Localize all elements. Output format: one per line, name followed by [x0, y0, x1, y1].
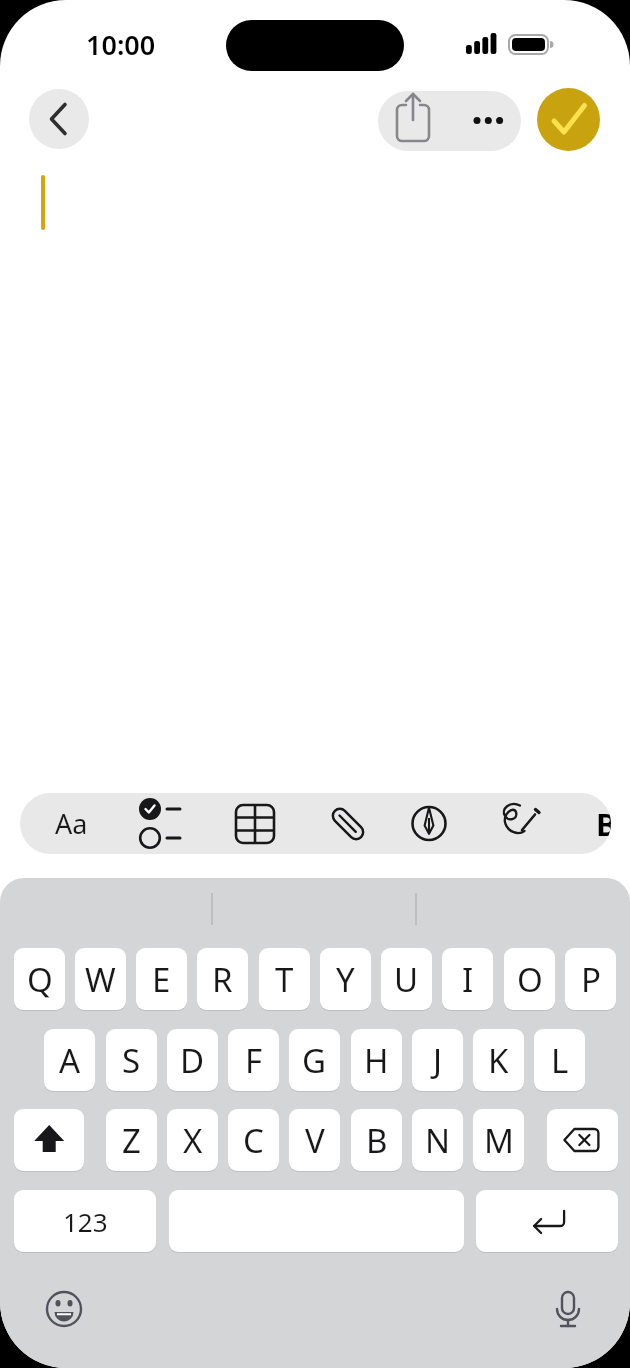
button[interactable]: P	[565, 948, 616, 1010]
button[interactable]: Aa	[40, 793, 102, 854]
button[interactable]	[40, 1286, 88, 1334]
button[interactable]	[476, 1190, 618, 1252]
staticText: M	[484, 1118, 514, 1163]
button[interactable]: X	[167, 1109, 218, 1171]
staticText: W	[85, 957, 116, 1002]
button[interactable]: O	[504, 948, 555, 1010]
button[interactable]	[399, 793, 459, 854]
button[interactable]: A	[44, 1029, 95, 1091]
button[interactable]: Y	[320, 948, 371, 1010]
button[interactable]: G	[289, 1029, 340, 1091]
staticText: H	[364, 1038, 389, 1083]
button[interactable]	[492, 793, 552, 854]
button[interactable]	[547, 1109, 618, 1171]
staticText: B	[596, 803, 611, 845]
button[interactable]: E	[136, 948, 187, 1010]
staticText: V	[305, 1118, 325, 1163]
staticText: O	[517, 957, 543, 1002]
button[interactable]: T	[259, 948, 310, 1010]
staticText: Aa	[55, 805, 88, 842]
button[interactable]: N	[412, 1109, 463, 1171]
button[interactable]: H	[351, 1029, 402, 1091]
staticText: B	[366, 1118, 388, 1163]
button[interactable]: R	[197, 948, 248, 1010]
staticText: D	[180, 1038, 205, 1083]
button[interactable]: M	[473, 1109, 524, 1171]
button[interactable]: S	[106, 1029, 157, 1091]
button[interactable]: C	[228, 1109, 279, 1171]
button[interactable]	[544, 1286, 592, 1334]
staticText: Y	[336, 957, 355, 1002]
staticText: L	[551, 1038, 569, 1083]
staticText: Q	[27, 957, 53, 1002]
button[interactable]: L	[534, 1029, 585, 1091]
staticText: 123	[63, 1204, 108, 1239]
button[interactable]: W	[75, 948, 126, 1010]
staticText: K	[488, 1038, 509, 1083]
button[interactable]: Q	[14, 948, 65, 1010]
staticText: 10:00	[86, 26, 156, 63]
staticText: X	[183, 1118, 203, 1163]
button[interactable]: D	[167, 1029, 218, 1091]
button[interactable]: 123	[14, 1190, 156, 1252]
staticText: A	[59, 1038, 81, 1083]
staticText: U	[394, 957, 419, 1002]
button[interactable]: B	[590, 793, 611, 854]
button[interactable]	[449, 91, 521, 151]
button[interactable]: I	[442, 948, 493, 1010]
staticText: F	[245, 1038, 263, 1083]
button[interactable]	[537, 88, 600, 151]
button[interactable]	[378, 91, 449, 151]
button[interactable]	[14, 1109, 84, 1171]
staticText: J	[433, 1038, 443, 1083]
staticText: S	[122, 1038, 141, 1083]
staticText: I	[462, 957, 474, 1002]
button[interactable]	[225, 793, 285, 854]
staticText: P	[581, 957, 601, 1002]
staticText: R	[212, 957, 233, 1002]
button[interactable]: K	[473, 1029, 524, 1091]
staticText: C	[243, 1118, 264, 1163]
staticText: N	[425, 1118, 451, 1163]
button[interactable]: B	[351, 1109, 402, 1171]
button[interactable]: U	[381, 948, 432, 1010]
button[interactable]	[318, 793, 378, 854]
staticText: T	[275, 957, 294, 1002]
staticText: E	[152, 957, 171, 1002]
staticText: G	[302, 1038, 327, 1083]
staticText: Z	[122, 1118, 141, 1163]
button[interactable]: Z	[106, 1109, 157, 1171]
button[interactable]: F	[228, 1029, 279, 1091]
button[interactable]: J	[412, 1029, 463, 1091]
button[interactable]	[127, 793, 187, 854]
button[interactable]: V	[289, 1109, 340, 1171]
button[interactable]	[29, 89, 89, 149]
